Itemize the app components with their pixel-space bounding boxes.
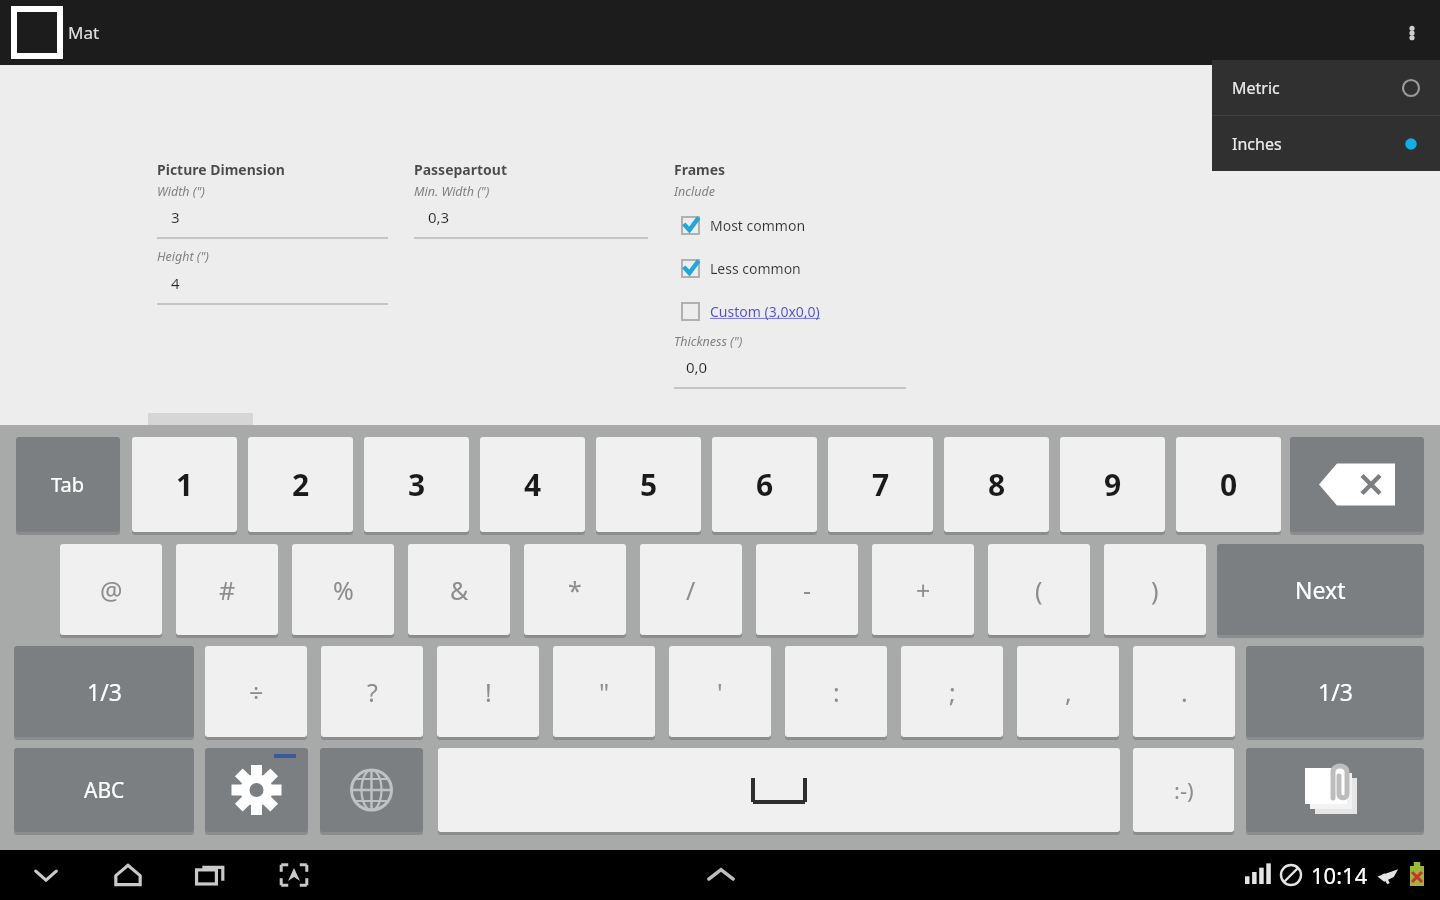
staticText: Include — [674, 183, 715, 200]
button[interactable]: * — [524, 544, 626, 635]
button[interactable]: ABC — [14, 748, 194, 832]
button[interactable]: # — [176, 544, 278, 635]
button[interactable]: Change language — [320, 748, 423, 832]
staticText: 6 — [756, 464, 774, 505]
button[interactable]: Inches — [1212, 116, 1440, 171]
button[interactable]: 0,3 — [414, 205, 648, 241]
button[interactable]: 1/3 — [14, 646, 194, 737]
staticText: ! — [485, 675, 492, 709]
button[interactable]: 7 — [828, 437, 933, 532]
button[interactable]: More options — [1384, 5, 1440, 61]
staticText: Frames — [674, 160, 726, 179]
staticText: 0,3 — [428, 207, 450, 227]
button[interactable]: 4 — [157, 271, 388, 307]
button[interactable]: % — [292, 544, 394, 635]
staticText: :-) — [1174, 775, 1194, 805]
staticText: Width (") — [157, 183, 205, 200]
staticText: 5 — [640, 464, 658, 505]
button[interactable]: Less common — [681, 255, 801, 281]
staticText: ÷ — [249, 675, 264, 709]
staticText: . — [1181, 675, 1188, 709]
staticText: 8 — [988, 464, 1006, 505]
button[interactable]: Settings — [205, 748, 308, 832]
button[interactable]: @ — [60, 544, 162, 635]
button[interactable]: ? — [321, 646, 423, 737]
button[interactable]: Backspace — [1290, 437, 1424, 532]
button[interactable]: Metric — [1212, 60, 1440, 115]
button[interactable]: , — [1017, 646, 1119, 737]
button[interactable]: Screenshot — [266, 850, 322, 900]
staticText: 7 — [872, 464, 890, 505]
staticText: Less common — [710, 259, 801, 278]
staticText: Mat — [68, 21, 100, 44]
button[interactable]: ( — [988, 544, 1090, 635]
staticText: ) — [1151, 573, 1159, 607]
staticText: Inches — [1232, 133, 1282, 155]
button[interactable]: : — [785, 646, 887, 737]
button[interactable]: 9 — [1060, 437, 1165, 532]
button[interactable]: 1/3 — [1246, 646, 1424, 737]
button[interactable]: Clipboard — [1246, 748, 1424, 832]
button[interactable]: ÷ — [205, 646, 307, 737]
button[interactable]: / — [640, 544, 742, 635]
button[interactable]: ' — [669, 646, 771, 737]
button[interactable]: Tab — [16, 437, 120, 532]
staticText: 3 — [171, 207, 180, 227]
button[interactable]: 0 — [1176, 437, 1281, 532]
staticText: # — [219, 573, 236, 607]
staticText: 4 — [171, 273, 180, 293]
staticText: 4 — [524, 464, 542, 505]
button[interactable]: 8 — [944, 437, 1049, 532]
button[interactable]: Space — [438, 748, 1120, 832]
button[interactable]: + — [872, 544, 974, 635]
button[interactable]: 2 — [248, 437, 353, 532]
staticText: 0 — [1220, 464, 1238, 505]
staticText: Tab — [51, 471, 85, 498]
staticText: - — [803, 573, 812, 607]
staticText: Most common — [710, 216, 806, 235]
staticText: : — [833, 675, 840, 709]
staticText: " — [599, 675, 610, 709]
button[interactable]: Recent apps — [182, 850, 238, 900]
staticText: ? — [367, 675, 378, 709]
button[interactable]: " — [553, 646, 655, 737]
staticText: Thickness (") — [674, 333, 743, 350]
staticText: Height (") — [157, 248, 209, 265]
button[interactable]: ) — [1104, 544, 1206, 635]
button[interactable]: :-) — [1133, 748, 1234, 832]
staticText: Next — [1295, 574, 1346, 605]
button[interactable]: Back — [18, 850, 74, 900]
staticText: Min. Width (") — [414, 183, 490, 200]
staticText: ( — [1035, 573, 1043, 607]
button[interactable]: Home — [100, 850, 156, 900]
button[interactable]: 3 — [157, 205, 388, 241]
button[interactable]: Next — [1217, 544, 1424, 635]
button[interactable]: 1 — [132, 437, 237, 532]
staticText: ABC — [84, 776, 125, 805]
button[interactable]: App icon — [14, 9, 60, 56]
button[interactable]: 3 — [364, 437, 469, 532]
button[interactable]: ; — [901, 646, 1003, 737]
staticText: @ — [100, 573, 123, 607]
button[interactable]: - — [756, 544, 858, 635]
button[interactable]: Hide keyboard — [693, 850, 749, 900]
button[interactable]: 0,0 — [674, 355, 906, 391]
staticText: , — [1065, 675, 1072, 709]
button[interactable]: ! — [437, 646, 539, 737]
staticText: 3 — [408, 464, 426, 505]
staticText: Picture Dimension — [157, 160, 285, 179]
staticText: * — [568, 573, 582, 607]
button[interactable]: Custom (3,0x0,0) — [681, 298, 820, 324]
button[interactable]: & — [408, 544, 510, 635]
button[interactable]: Calculate — [148, 413, 253, 454]
staticText: 0,0 — [686, 357, 708, 377]
staticText: / — [686, 573, 696, 607]
button[interactable]: 4 — [480, 437, 585, 532]
staticText: 2 — [292, 464, 310, 505]
button[interactable]: Most common — [681, 212, 806, 238]
button[interactable]: 5 — [596, 437, 701, 532]
button[interactable]: 6 — [712, 437, 817, 532]
staticText: ; — [949, 675, 956, 709]
button[interactable]: . — [1133, 646, 1235, 737]
staticText: + — [916, 573, 931, 607]
